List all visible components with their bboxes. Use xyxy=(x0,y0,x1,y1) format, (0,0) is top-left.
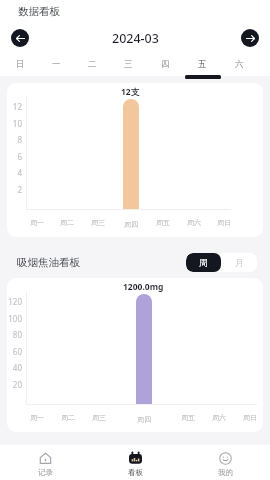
staticText: 12支 xyxy=(121,86,140,98)
staticText: 10 xyxy=(9,118,22,129)
button[interactable]: 五 xyxy=(184,59,221,77)
staticText: 看板 xyxy=(128,468,143,477)
staticText: 数据看板 xyxy=(18,5,60,18)
staticText: 1200.0mg xyxy=(123,281,164,293)
button[interactable]: 我的 xyxy=(180,445,270,480)
button[interactable]: 四 xyxy=(147,59,184,77)
button[interactable]: 日 xyxy=(2,59,38,77)
staticText: 周四 xyxy=(124,220,138,229)
staticText: 60 xyxy=(7,346,22,357)
staticText: 吸烟焦油看板 xyxy=(17,256,80,269)
staticText: 五 xyxy=(198,59,207,70)
staticText: 120 xyxy=(7,296,22,307)
button[interactable]: Previous month xyxy=(11,29,29,47)
staticText: 周五 xyxy=(181,413,195,422)
button[interactable]: 六 xyxy=(221,59,258,77)
staticText: 三 xyxy=(124,59,133,70)
staticText: 日 xyxy=(16,59,25,70)
button[interactable]: 三 xyxy=(110,59,147,77)
staticText: 周二 xyxy=(61,413,75,422)
staticText: 周四 xyxy=(137,415,151,424)
staticText: 一 xyxy=(52,59,61,70)
staticText: 6 xyxy=(9,151,22,162)
button[interactable]: 看板 xyxy=(90,445,180,480)
staticText: 周三 xyxy=(91,218,105,227)
staticText: 12 xyxy=(9,101,22,112)
staticText: 四 xyxy=(161,59,170,70)
staticText: 记录 xyxy=(38,468,53,477)
staticText: 4 xyxy=(9,167,22,178)
staticText: 周日 xyxy=(243,413,257,422)
staticText: 周六 xyxy=(187,218,201,227)
button[interactable]: 周 xyxy=(186,253,221,272)
staticText: 周六 xyxy=(212,413,226,422)
staticText: 周一 xyxy=(30,413,44,422)
staticText: 周日 xyxy=(217,218,231,227)
button[interactable]: 一 xyxy=(38,59,74,77)
staticText: 2024-03 xyxy=(112,30,159,47)
staticText: 周 xyxy=(199,257,208,268)
staticText: 周一 xyxy=(30,218,44,227)
staticText: 周二 xyxy=(60,218,74,227)
staticText: 月 xyxy=(235,257,244,268)
button[interactable]: 月 xyxy=(221,253,257,272)
staticText: 六 xyxy=(235,59,244,70)
staticText: 80 xyxy=(7,329,22,340)
staticText: 40 xyxy=(7,362,22,373)
button[interactable]: 二 xyxy=(74,59,110,77)
staticText: 20 xyxy=(7,379,22,390)
button[interactable]: 记录 xyxy=(0,445,90,480)
button[interactable]: Next month xyxy=(241,29,259,47)
staticText: 2 xyxy=(9,184,22,195)
staticText: 周三 xyxy=(92,413,106,422)
staticText: 我的 xyxy=(218,468,233,477)
staticText: 周五 xyxy=(156,218,170,227)
staticText: 8 xyxy=(9,134,22,145)
staticText: 100 xyxy=(7,313,22,324)
staticText: 二 xyxy=(88,59,97,70)
